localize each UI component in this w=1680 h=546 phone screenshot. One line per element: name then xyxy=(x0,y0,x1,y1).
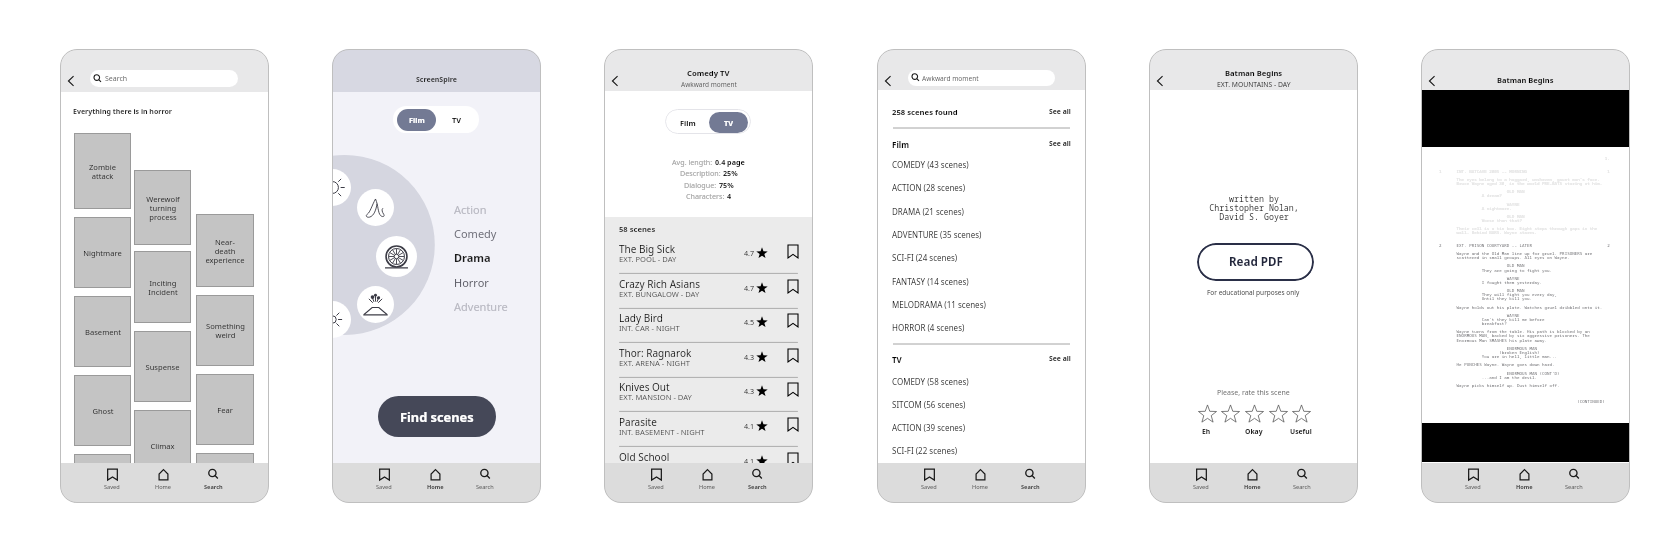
staticText: Search xyxy=(204,483,223,491)
button[interactable]: Genre icon xyxy=(332,301,351,338)
staticText: Home xyxy=(427,483,444,491)
button[interactable]: ADVENTURE (35 scenes) xyxy=(892,226,1012,242)
button[interactable]: FANTASY (14 scenes) xyxy=(892,273,1012,289)
button[interactable]: Saved xyxy=(632,465,680,501)
button[interactable]: COMEDY (58 scenes) xyxy=(892,373,1012,389)
button[interactable]: Crazy Rich Asians xyxy=(604,274,813,309)
staticText: SCI-FI (22 scenes) xyxy=(892,445,958,456)
button[interactable]: Find scenes xyxy=(378,396,496,437)
button[interactable]: Knives Out xyxy=(604,377,813,412)
button[interactable]: Awkward moment xyxy=(908,70,1055,86)
button[interactable]: Saved xyxy=(1177,465,1225,501)
button[interactable]: Parasite xyxy=(604,412,813,447)
button[interactable]: Film xyxy=(397,109,436,131)
button[interactable]: Genre icon xyxy=(376,236,417,277)
button[interactable]: HORROR (4 scenes) xyxy=(892,319,1012,335)
button[interactable]: Suspense xyxy=(134,331,191,402)
button[interactable]: TV xyxy=(709,112,748,133)
button[interactable]: Comedy xyxy=(454,224,518,243)
button[interactable]: Search xyxy=(1006,465,1054,501)
button[interactable]: Drama xyxy=(454,248,518,267)
button[interactable]: Fear xyxy=(196,374,254,445)
staticText: ENORMOUS MAN xyxy=(1439,346,1537,352)
button[interactable]: Zombie attack xyxy=(74,133,131,209)
button[interactable]: Home xyxy=(411,465,459,501)
button[interactable]: Horror xyxy=(454,273,518,292)
staticText: 0.4 page xyxy=(715,157,745,167)
staticText: Saved xyxy=(104,483,120,491)
button[interactable]: Home xyxy=(683,465,731,501)
button[interactable]: Rate 5 stars xyxy=(1292,404,1311,423)
staticText: 75% xyxy=(719,180,734,190)
button[interactable]: Werewolf turning process xyxy=(134,170,191,245)
staticText: Comedy xyxy=(454,226,497,241)
button[interactable]: Search xyxy=(1550,465,1598,501)
staticText: Thor: Ragnarok xyxy=(619,346,692,360)
button[interactable]: DRAMA (21 scenes) xyxy=(892,203,1012,219)
button[interactable]: Search xyxy=(1278,465,1326,501)
button[interactable]: Home xyxy=(956,465,1004,501)
button[interactable]: Home xyxy=(1500,465,1548,501)
button[interactable]: TV xyxy=(437,109,476,131)
button[interactable]: COMEDY (43 scenes) xyxy=(892,156,1012,172)
button[interactable]: Read PDF xyxy=(1197,243,1314,281)
button[interactable]: SITCOM (56 scenes) xyxy=(892,396,1012,412)
button[interactable]: Saved xyxy=(88,465,136,501)
staticText: Climax xyxy=(150,441,175,451)
button[interactable]: TV xyxy=(892,354,1071,365)
button[interactable] xyxy=(74,454,131,503)
button[interactable]: Saved xyxy=(905,465,953,501)
button[interactable]: 258 scenes found xyxy=(892,107,1071,117)
button[interactable]: MELODRAMA (11 scenes) xyxy=(892,296,1012,312)
button[interactable]: SCI-FI (24 scenes) xyxy=(892,249,1012,265)
button[interactable]: Old School xyxy=(604,447,813,482)
staticText: EXT. MOUNTAINS - DAY xyxy=(1217,80,1291,89)
button[interactable]: Back xyxy=(1152,73,1168,89)
staticText: The Big Sick xyxy=(619,242,676,256)
button[interactable]: Nightmare xyxy=(74,217,131,288)
button[interactable]: Search xyxy=(461,465,509,501)
button[interactable]: Adventure xyxy=(454,297,518,316)
button[interactable]: Genre icon xyxy=(357,286,394,323)
button[interactable]: ACTION (28 scenes) xyxy=(892,179,1012,195)
button[interactable]: SCI-FI (22 scenes) xyxy=(892,442,1012,458)
button[interactable]: Inciting Incident xyxy=(134,251,191,323)
button[interactable]: Back xyxy=(1424,73,1440,89)
staticText: Saved xyxy=(1465,483,1481,491)
staticText: INT. BASEMENT - NIGHT xyxy=(619,427,705,437)
button[interactable]: The Big Sick xyxy=(604,239,813,274)
button[interactable]: Back xyxy=(607,73,623,89)
button[interactable]: Rate 2 stars xyxy=(1221,404,1240,423)
staticText: Action xyxy=(454,202,487,217)
button[interactable] xyxy=(196,453,254,503)
button[interactable]: Action xyxy=(454,200,518,219)
button[interactable]: Film xyxy=(668,112,707,133)
button[interactable]: Lady Bird xyxy=(604,308,813,343)
button[interactable]: Rate 3 stars xyxy=(1245,404,1264,423)
button[interactable]: Saved xyxy=(360,465,408,501)
button[interactable]: Home xyxy=(139,465,187,501)
staticText: COMEDY (43 scenes) xyxy=(892,159,969,170)
button[interactable]: ACTION (39 scenes) xyxy=(892,419,1012,435)
button[interactable]: Near- death experience xyxy=(196,214,254,287)
staticText: The eyes belong to a haggard, unshaven, … xyxy=(1439,177,1600,183)
button[interactable]: Genre icon xyxy=(332,169,351,206)
button[interactable]: Saved xyxy=(1449,465,1497,501)
button[interactable]: Film xyxy=(892,139,1071,150)
button[interactable]: Back xyxy=(63,73,79,89)
button[interactable]: Search xyxy=(90,70,238,87)
button[interactable]: Ghost xyxy=(74,375,131,446)
button[interactable]: Basement xyxy=(74,296,131,367)
button[interactable]: Thor: Ragnarok xyxy=(604,343,813,378)
button[interactable]: Climax xyxy=(134,410,191,481)
staticText: For educational purposes only xyxy=(1207,288,1300,297)
button[interactable]: Rate 4 stars xyxy=(1269,404,1288,423)
button[interactable]: Rate 1 stars xyxy=(1198,404,1217,423)
button[interactable]: Home xyxy=(1228,465,1276,501)
staticText: They will fight you every day, xyxy=(1439,292,1558,298)
button[interactable]: Back xyxy=(880,73,896,89)
button[interactable]: Search xyxy=(189,465,237,501)
button[interactable]: Genre icon xyxy=(357,189,394,226)
button[interactable]: Something weird xyxy=(196,295,254,366)
button[interactable]: Search xyxy=(733,465,781,501)
